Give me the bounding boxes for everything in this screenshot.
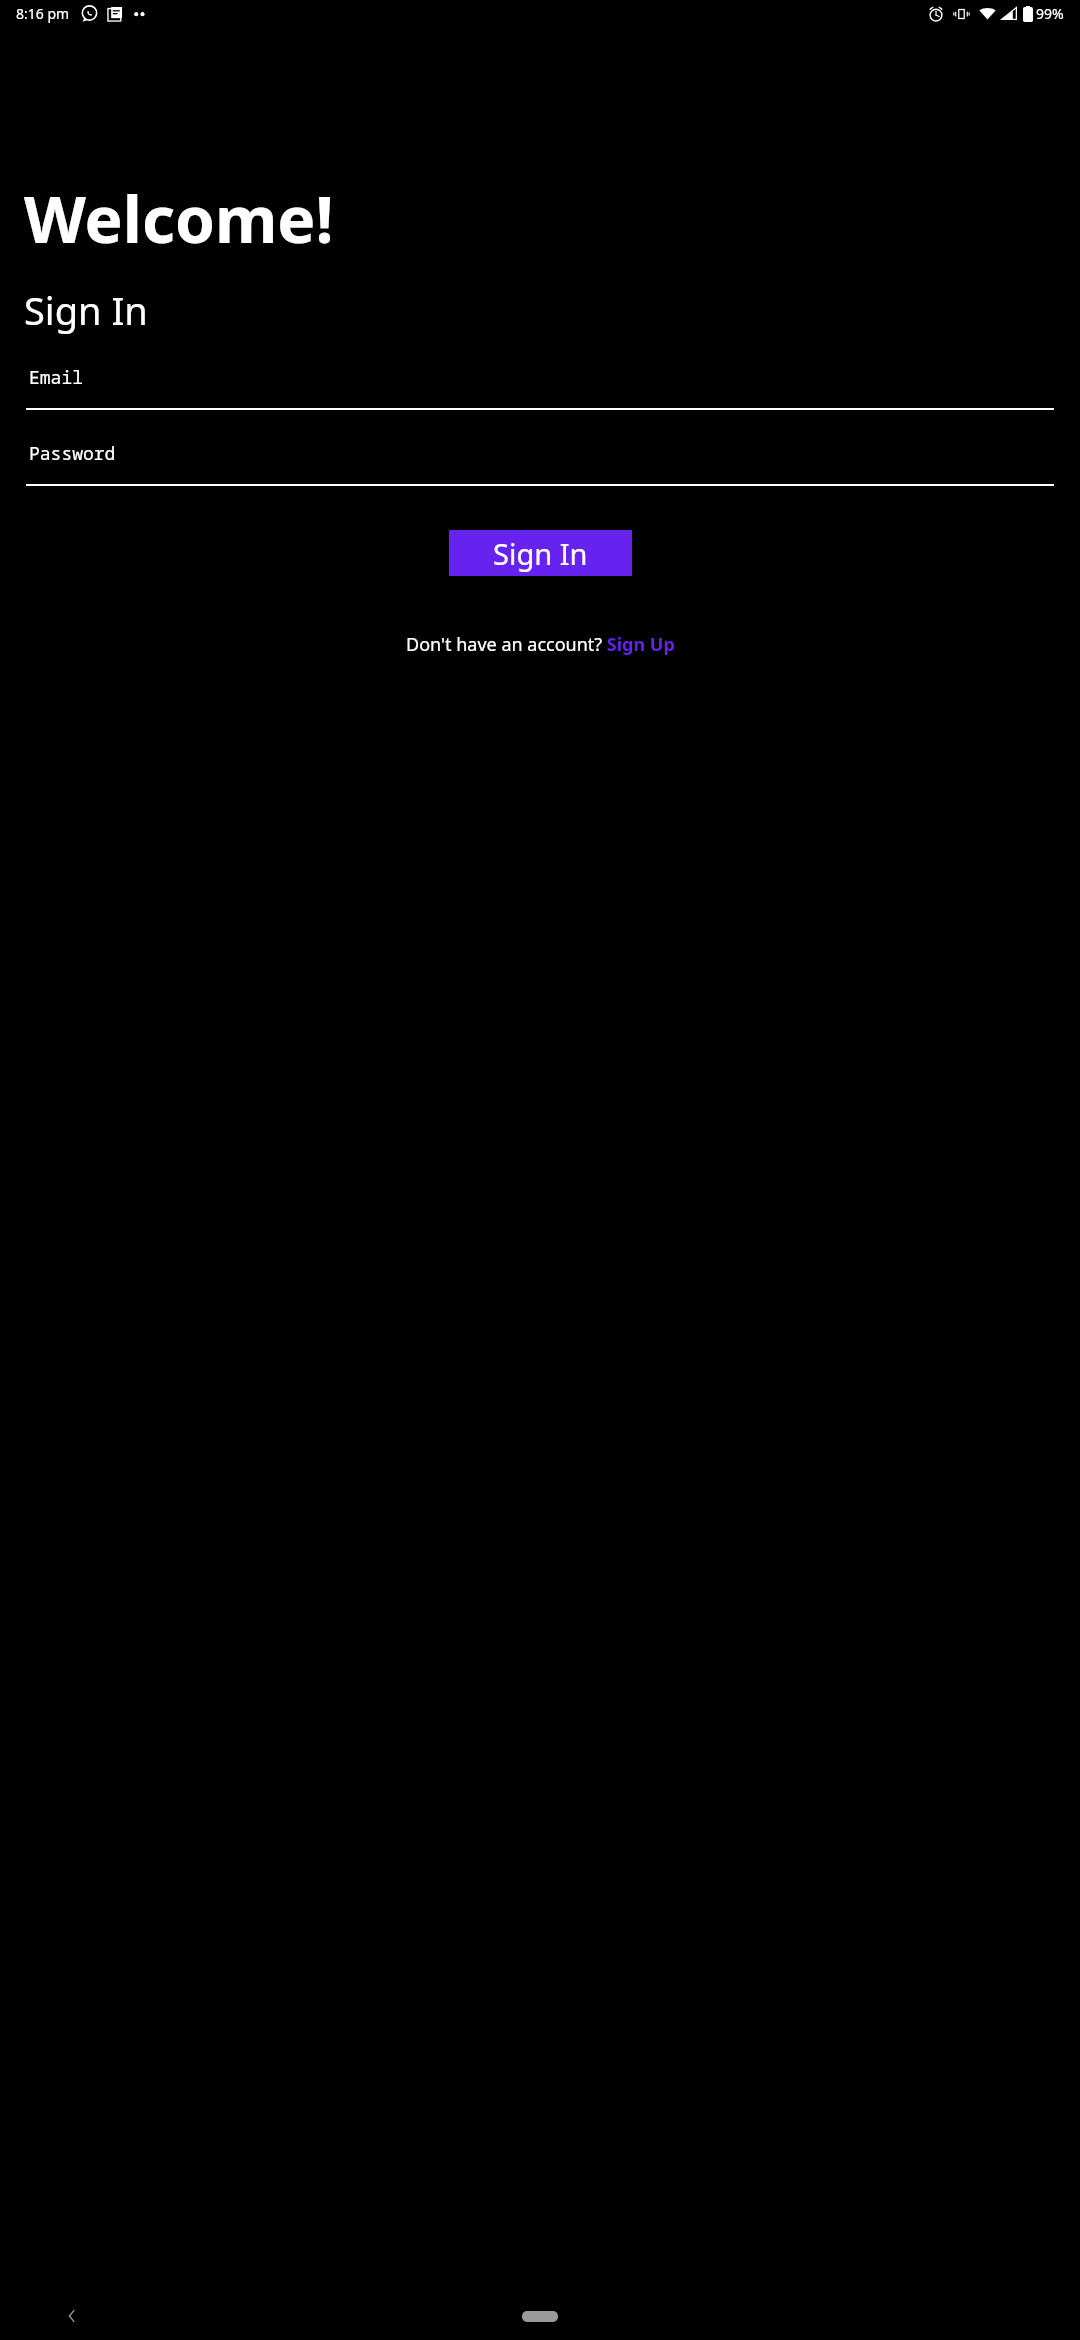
staticText: Welcome! — [24, 175, 334, 262]
staticText: Sign In — [24, 284, 148, 336]
button[interactable]: Password — [26, 436, 1054, 486]
staticText: 8:16 pm — [16, 4, 70, 23]
button[interactable]: Sign In — [449, 530, 632, 576]
button[interactable]: Back — [56, 2300, 88, 2332]
staticText: 99% — [1036, 4, 1064, 23]
staticText: Email — [29, 365, 83, 390]
button[interactable]: Home — [522, 2311, 558, 2322]
staticText: Password — [29, 441, 116, 466]
button[interactable]: Don't have an account? Sign Up — [406, 632, 675, 657]
staticText: Don't have an account? Sign Up — [406, 632, 675, 657]
button[interactable]: Email — [26, 360, 1054, 410]
staticText: Sign In — [493, 534, 588, 573]
